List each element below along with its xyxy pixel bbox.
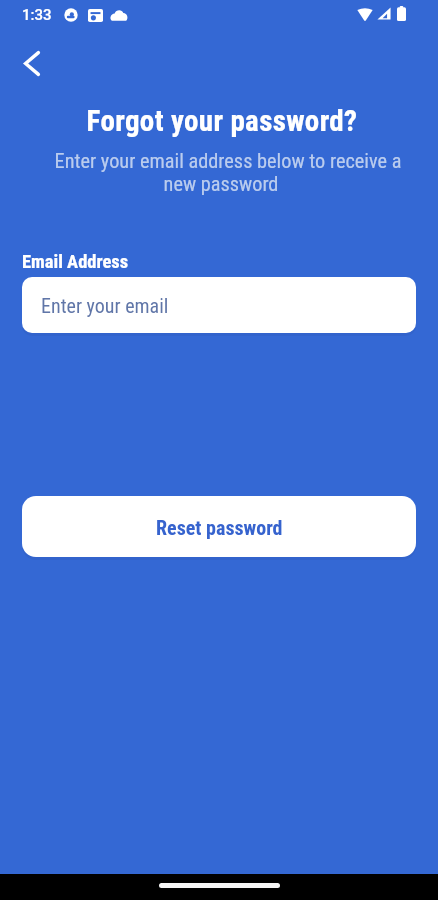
button[interactable]: Back — [9, 40, 55, 86]
staticText: 1:33 — [22, 6, 52, 24]
staticText: Forgot your password? — [3, 104, 438, 138]
staticText: Enter your email address below to receiv… — [9, 149, 438, 173]
button[interactable]: Enter your email — [22, 277, 416, 333]
staticText: Email Address — [22, 251, 129, 273]
button[interactable]: Reset password — [22, 496, 416, 557]
staticText: Reset password — [156, 516, 283, 539]
staticText: Enter your email — [41, 294, 169, 317]
staticText: new password — [2, 172, 438, 196]
